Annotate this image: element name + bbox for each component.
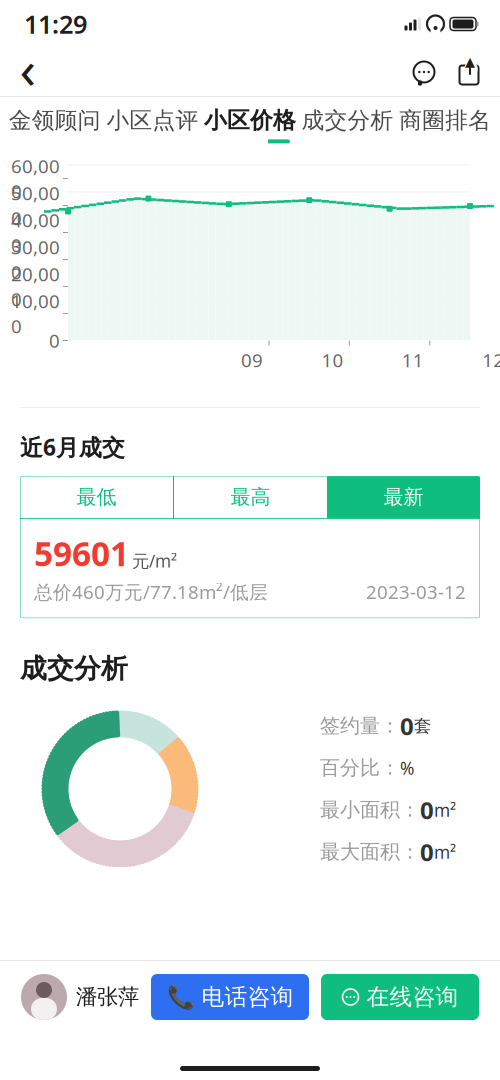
staticText: 小区点评 [106,107,198,134]
staticText: 最大面积 [320,840,400,864]
staticText: 20,000 [11,262,60,311]
staticText: 30,000 [11,235,60,284]
button[interactable]: 最新 [327,476,480,518]
staticText: ▴ [465,50,475,72]
staticText: 0 [420,794,434,826]
staticText: 0 [400,710,414,742]
button[interactable]: Comments [402,48,446,96]
button[interactable]: 在线咨询 [321,974,479,1020]
staticText: 成交分析 [302,107,394,134]
button[interactable]: 小区价格 [201,103,299,147]
staticText: 60,000 [11,154,60,203]
button[interactable]: Share [446,48,492,96]
button[interactable]: 最低 [20,476,173,518]
staticText: 59601 [34,531,129,575]
staticText: 最新 [383,485,423,509]
staticText: 10 [321,348,343,372]
staticText: m² [434,840,456,863]
button[interactable]: 商圈排名 [396,103,494,147]
staticText: 成交分析 [20,652,128,685]
staticText: 最低 [76,485,116,509]
staticText: 最高 [230,485,270,509]
button[interactable]: 📞 [151,974,309,1020]
staticText: 40,000 [11,208,60,257]
staticText: 元/m² [132,549,177,572]
staticText: 0 [49,328,60,353]
staticText: 商圈排名 [399,107,491,134]
staticText: m² [434,798,456,821]
staticText: 在线咨询 [366,983,458,1011]
staticText: 小区价格 [204,107,296,134]
staticText: 11 [402,348,424,372]
staticText: 12 [482,348,500,372]
staticText: 09 [241,348,263,372]
staticText: 近6月成交 [20,432,125,462]
button[interactable]: 小区点评 [104,103,201,147]
staticText: ‹ [19,33,36,103]
staticText: 10,000 [11,289,60,338]
staticText: ： [380,714,400,738]
staticText: 签约量 [320,714,380,738]
staticText: 潘张萍 [76,984,139,1010]
staticText: 11:29 [24,7,87,41]
button[interactable]: 最高 [174,476,327,518]
staticText: 套 [414,715,431,737]
staticText: ： [380,756,400,780]
staticText: 百分比 [320,756,380,780]
button[interactable]: 金领顾问 [6,103,104,147]
staticText: 电话咨询 [201,983,293,1011]
staticText: ： [400,798,420,822]
staticText: ： [400,840,420,864]
staticText: 总价460万元/77.18m²/低层 [34,579,268,604]
staticText: 0 [420,836,434,868]
staticText: 50,000 [11,181,60,230]
button[interactable]: 成交分析 [299,103,396,147]
staticText: % [400,756,414,779]
staticText: 最小面积 [320,798,400,822]
staticText: 📞 [166,984,194,1010]
staticText: 金领顾问 [9,107,101,134]
staticText: 2023-03-12 [366,579,466,604]
button[interactable]: 潘张萍 [21,974,139,1020]
button[interactable]: Back [0,48,56,96]
